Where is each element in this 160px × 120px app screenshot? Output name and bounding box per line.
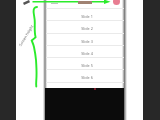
staticText: Slide 3 (81, 39, 93, 44)
staticText: Screen height (18, 24, 34, 47)
staticText: Slide 2 (81, 26, 93, 31)
staticText: Slide 4 (81, 51, 93, 56)
button[interactable]: Marker (113, 0, 120, 5)
staticText: Slide 1 (81, 14, 93, 19)
button[interactable]: Slide 5 (46, 57, 124, 69)
staticText: Slide 5 (81, 63, 93, 68)
staticText: Slide 6 (81, 75, 93, 80)
button[interactable]: Slide 4 (46, 45, 124, 57)
button[interactable]: Slide 6 (46, 69, 124, 81)
button[interactable]: Slide 3 (46, 33, 124, 45)
button[interactable]: Slide 1 (46, 8, 124, 20)
button[interactable]: Slide 2 (46, 20, 124, 32)
other: annotations (0, 0, 160, 120)
